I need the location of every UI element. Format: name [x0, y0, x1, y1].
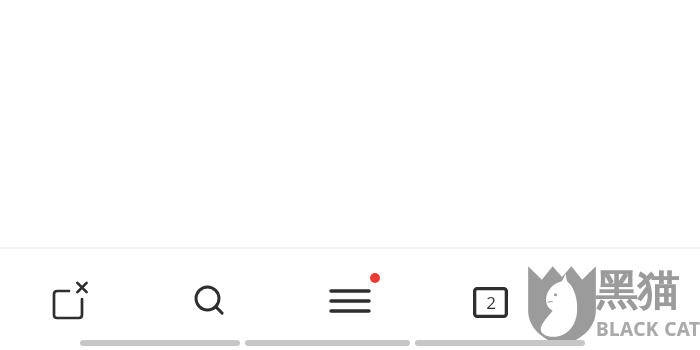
button[interactable]: Search — [182, 274, 238, 330]
staticText: 2 — [486, 291, 496, 314]
staticText: BLACK CAT — [596, 316, 700, 342]
staticText: 黑猫 — [595, 265, 679, 315]
button[interactable]: 2 — [462, 274, 518, 330]
button[interactable]: Stop loading — [42, 274, 98, 330]
button[interactable]: Menu — [320, 268, 384, 332]
